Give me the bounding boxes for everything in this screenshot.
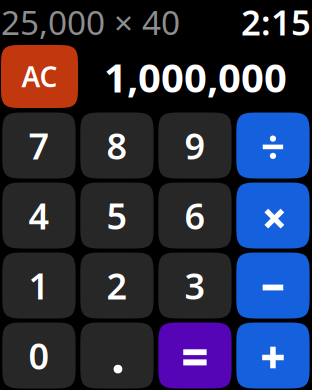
- button[interactable]: Decimal point: [80, 322, 154, 388]
- button[interactable]: 2: [80, 252, 154, 318]
- staticText: 4: [28, 192, 49, 239]
- staticText: 6: [184, 192, 205, 239]
- staticText: 25,000 × 40: [1, 0, 180, 44]
- button[interactable]: 1: [2, 252, 76, 318]
- button[interactable]: 5: [80, 182, 154, 248]
- staticText: 1: [28, 262, 49, 309]
- button[interactable]: Add: [236, 322, 310, 388]
- staticText: 5: [106, 192, 127, 239]
- button[interactable]: Subtract: [236, 252, 310, 318]
- staticText: 9: [184, 122, 205, 169]
- button[interactable]: AC: [1, 45, 78, 108]
- button[interactable]: Divide: [236, 112, 310, 178]
- staticText: 7: [28, 122, 49, 169]
- button[interactable]: 7: [2, 112, 76, 178]
- staticText: 8: [106, 122, 127, 169]
- button[interactable]: Multiply: [236, 182, 310, 248]
- button[interactable]: 4: [2, 182, 76, 248]
- button[interactable]: 8: [80, 112, 154, 178]
- staticText: AC: [21, 58, 57, 95]
- staticText: 0: [28, 332, 49, 379]
- button[interactable]: 3: [158, 252, 232, 318]
- button[interactable]: 9: [158, 112, 232, 178]
- button[interactable]: 0: [2, 322, 76, 388]
- staticText: 1,000,000: [104, 50, 287, 103]
- staticText: 2:15: [241, 0, 311, 45]
- staticText: 3: [184, 262, 205, 309]
- button[interactable]: Equals: [158, 322, 232, 388]
- button[interactable]: 6: [158, 182, 232, 248]
- staticText: 2: [106, 262, 127, 309]
